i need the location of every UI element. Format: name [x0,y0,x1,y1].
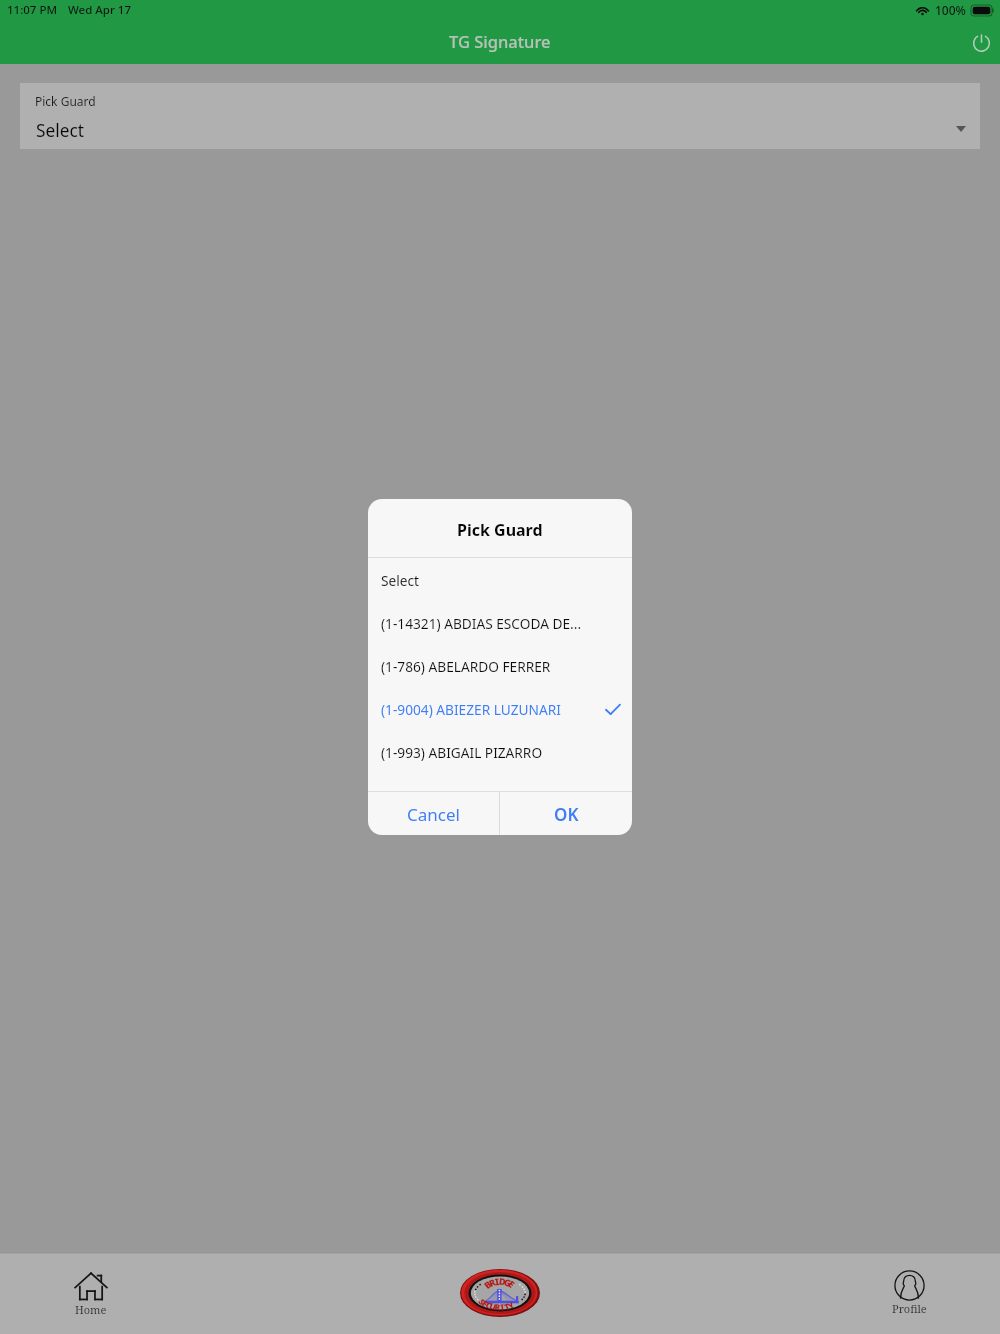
staticText: 100% [935,2,966,18]
staticText: Profile [892,1301,927,1316]
button[interactable]: Profile [858,1252,960,1334]
button[interactable]: Bridge Security home [440,1252,560,1334]
staticText: (1-786) ABELARDO FERRER [381,657,551,676]
staticText: 11:07 PM [7,2,58,18]
button[interactable]: Pick Guard [20,83,980,149]
staticText: Cancel [407,803,460,826]
staticText: Pick Guard [457,519,543,541]
staticText: (1-993) ABIGAIL PIZARRO [381,743,543,762]
staticText: TG Signature [449,30,551,52]
button[interactable]: (1-786) ABELARDO FERRER [368,645,632,688]
button[interactable]: Cancel [368,792,499,835]
button[interactable]: (1-993) ABIGAIL PIZARRO [368,731,632,774]
button[interactable]: Power / Logout [963,24,999,60]
staticText: (1-9004) ABIEZER LUZUNARI [381,700,561,719]
button[interactable]: (1-9004) ABIEZER LUZUNARI [368,688,632,731]
staticText: Select [381,571,419,590]
staticText: Select [36,119,85,143]
button[interactable]: (1-14321) ABDIAS ESCODA DE... [368,602,632,645]
button[interactable]: OK [500,792,632,835]
button[interactable]: Home [40,1252,142,1334]
staticText: OK [554,803,579,826]
button[interactable]: Select [368,559,632,602]
staticText: Wed Apr 17 [68,2,131,18]
staticText: Home [75,1302,107,1317]
staticText: Pick Guard [35,93,96,109]
staticText: (1-14321) ABDIAS ESCODA DE... [381,614,582,633]
